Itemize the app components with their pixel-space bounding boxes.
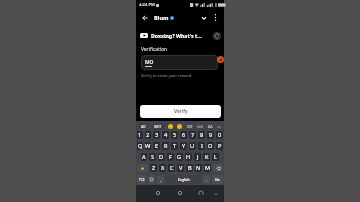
staticText: Q	[138, 142, 143, 150]
staticText: 4:24 PM	[139, 2, 155, 8]
staticText: Z	[152, 164, 156, 172]
button[interactable]: 3	[153, 131, 160, 139]
button[interactable]: MO	[141, 55, 218, 70]
button[interactable]: Shift	[137, 164, 148, 172]
button[interactable]: Q	[137, 142, 143, 150]
staticText: AD	[141, 125, 146, 129]
staticText: E	[155, 142, 159, 150]
button[interactable]: Hide keyboard	[211, 189, 220, 198]
button[interactable]: 2	[145, 131, 151, 139]
button[interactable]: R	[162, 142, 169, 150]
button[interactable]: L	[212, 153, 219, 161]
staticText: R	[164, 142, 168, 150]
staticText: Go	[215, 177, 220, 182]
button[interactable]: 0	[216, 131, 223, 139]
button[interactable]: Expand	[198, 12, 209, 23]
staticText: 0	[218, 131, 222, 139]
staticText: 5	[173, 131, 177, 139]
button[interactable]: English	[166, 175, 201, 184]
button[interactable]: W	[145, 142, 151, 150]
button[interactable]: M	[204, 164, 211, 172]
button[interactable]: ?12	[137, 175, 146, 184]
button[interactable]: U	[189, 142, 196, 150]
staticText: D	[159, 153, 164, 161]
button[interactable]: Go	[212, 175, 223, 184]
staticText: N	[196, 164, 201, 172]
staticText: MOT	[154, 125, 162, 129]
staticText: B	[188, 164, 192, 172]
button[interactable]: 6	[180, 131, 187, 139]
staticText: ,	[160, 177, 162, 182]
button[interactable]: T	[171, 142, 178, 150]
staticText: 1	[138, 131, 142, 139]
button[interactable]: F	[167, 153, 174, 161]
button[interactable]: Back	[153, 188, 162, 197]
staticText: GIF	[187, 124, 193, 129]
staticText: 6	[182, 131, 186, 139]
button[interactable]: 5	[171, 131, 178, 139]
staticText: Verify to claim your reward	[141, 73, 192, 78]
button[interactable]: Home	[175, 188, 184, 197]
button[interactable]: Verify	[140, 105, 221, 118]
staticText: L	[214, 153, 217, 161]
button[interactable]: N	[195, 164, 202, 172]
staticText: M	[205, 164, 211, 172]
staticText: H	[186, 153, 191, 161]
staticText: Y	[182, 142, 186, 150]
staticText: ⚙⚙	[197, 125, 204, 129]
staticText: K	[205, 153, 209, 161]
button[interactable]: A	[141, 153, 147, 161]
button[interactable]: Backspace	[213, 164, 223, 172]
button[interactable]: 1	[137, 131, 143, 139]
button[interactable]: Back	[139, 12, 150, 23]
staticText: J	[197, 153, 199, 161]
staticText: ?12	[139, 177, 145, 182]
staticText: 2	[146, 131, 150, 139]
button[interactable]: 8	[198, 131, 205, 139]
button[interactable]: X	[159, 164, 166, 172]
staticText: MO	[145, 59, 154, 66]
button[interactable]: 9	[207, 131, 214, 139]
button[interactable]: Emoji	[148, 175, 155, 184]
staticText: 9	[209, 131, 213, 139]
button[interactable]: J	[194, 153, 201, 161]
button[interactable]: .	[203, 175, 210, 184]
button[interactable]: C	[168, 164, 175, 172]
staticText: X	[161, 164, 165, 172]
staticText: V	[179, 164, 183, 172]
button[interactable]: Refresh	[213, 32, 221, 40]
button[interactable]: Recents	[196, 188, 205, 197]
button[interactable]: I	[198, 142, 205, 150]
staticText: O	[208, 142, 213, 150]
button[interactable]: K	[203, 153, 210, 161]
button[interactable]: O	[207, 142, 214, 150]
staticText: 4	[164, 131, 168, 139]
button[interactable]: Y	[180, 142, 187, 150]
button[interactable]: G	[176, 153, 183, 161]
staticText: F	[169, 153, 172, 161]
staticText: A	[142, 153, 146, 161]
button[interactable]: D	[158, 153, 165, 161]
button[interactable]: E	[153, 142, 160, 150]
staticText: W	[145, 142, 151, 150]
button[interactable]: AD	[139, 124, 148, 130]
button[interactable]: B	[186, 164, 193, 172]
button[interactable]: ,	[157, 175, 164, 184]
staticText: P	[218, 142, 222, 150]
button[interactable]: H	[185, 153, 192, 161]
staticText: Verification	[141, 46, 168, 53]
button[interactable]: P	[216, 142, 223, 150]
staticText: Doxxing? What's t…	[151, 32, 202, 39]
staticText: 3	[155, 131, 159, 139]
staticText: English	[178, 177, 190, 182]
staticText: Blum	[154, 14, 169, 22]
button[interactable]: S	[149, 153, 156, 161]
button[interactable]: Z	[150, 164, 157, 172]
staticText: 7	[191, 131, 195, 139]
staticText: U	[190, 142, 195, 150]
button[interactable]: 4	[162, 131, 169, 139]
button[interactable]: More options	[210, 12, 221, 23]
button[interactable]: V	[177, 164, 184, 172]
button[interactable]: 7	[189, 131, 196, 139]
button[interactable]: MOT	[152, 124, 164, 130]
